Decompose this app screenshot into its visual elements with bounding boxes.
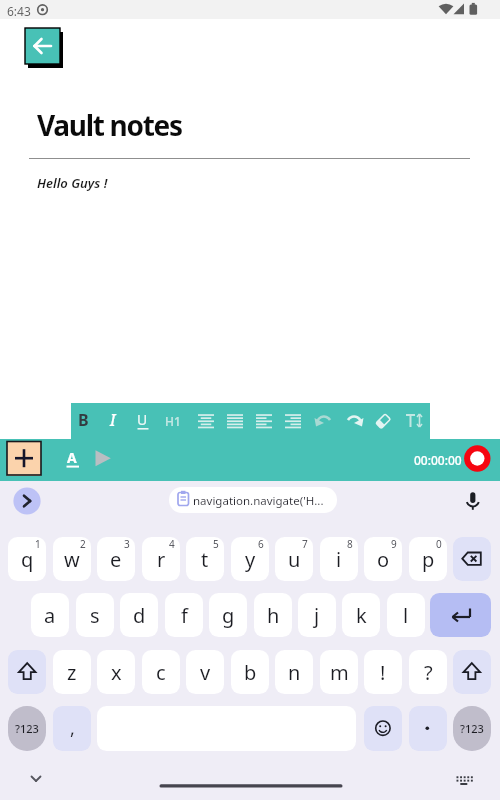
- staticText: ,: [70, 716, 75, 741]
- staticText: z: [67, 659, 77, 686]
- staticText: f: [181, 602, 188, 629]
- staticText: p: [422, 546, 435, 573]
- staticText: e: [110, 546, 122, 573]
- staticText: ?123: [460, 721, 484, 736]
- staticText: s: [90, 602, 100, 629]
- staticText: Vault notes: [37, 106, 182, 144]
- staticText: B: [78, 409, 89, 431]
- staticText: k: [356, 602, 367, 629]
- staticText: y: [245, 546, 256, 573]
- staticText: c: [156, 659, 166, 686]
- staticText: a: [44, 602, 56, 629]
- staticText: 7: [302, 537, 308, 551]
- staticText: i: [336, 546, 342, 573]
- staticText: !: [380, 659, 386, 686]
- staticText: 4: [169, 537, 175, 551]
- staticText: n: [288, 659, 301, 686]
- staticText: 0: [436, 537, 442, 551]
- staticText: b: [244, 659, 257, 686]
- staticText: H1: [165, 413, 181, 429]
- staticText: A: [67, 448, 77, 467]
- staticText: I: [110, 409, 116, 431]
- staticText: 3: [124, 537, 130, 551]
- staticText: 6: [258, 537, 264, 551]
- staticText: o: [377, 546, 390, 573]
- staticText: 9: [391, 537, 397, 551]
- staticText: g: [222, 602, 235, 629]
- staticText: h: [267, 602, 280, 629]
- staticText: l: [403, 602, 409, 629]
- staticText: Hello Guys !: [37, 174, 108, 192]
- staticText: j: [314, 602, 320, 629]
- staticText: q: [21, 546, 34, 573]
- staticText: 1: [35, 537, 41, 551]
- staticText: ?123: [15, 721, 39, 736]
- staticText: w: [64, 546, 80, 573]
- staticText: x: [111, 659, 122, 686]
- staticText: navigation.navigate('H...: [193, 493, 324, 509]
- staticText: 00:00:00: [414, 452, 462, 468]
- staticText: 6:43: [7, 3, 31, 19]
- staticText: ?: [424, 659, 433, 686]
- staticText: 2: [80, 537, 86, 551]
- staticText: m: [330, 659, 349, 686]
- staticText: 8: [347, 537, 353, 551]
- staticText: v: [200, 659, 211, 686]
- staticText: r: [157, 546, 166, 573]
- staticText: t: [201, 546, 209, 573]
- staticText: u: [288, 546, 301, 573]
- staticText: d: [133, 602, 146, 629]
- staticText: 5: [213, 537, 219, 551]
- staticText: U: [137, 410, 148, 429]
